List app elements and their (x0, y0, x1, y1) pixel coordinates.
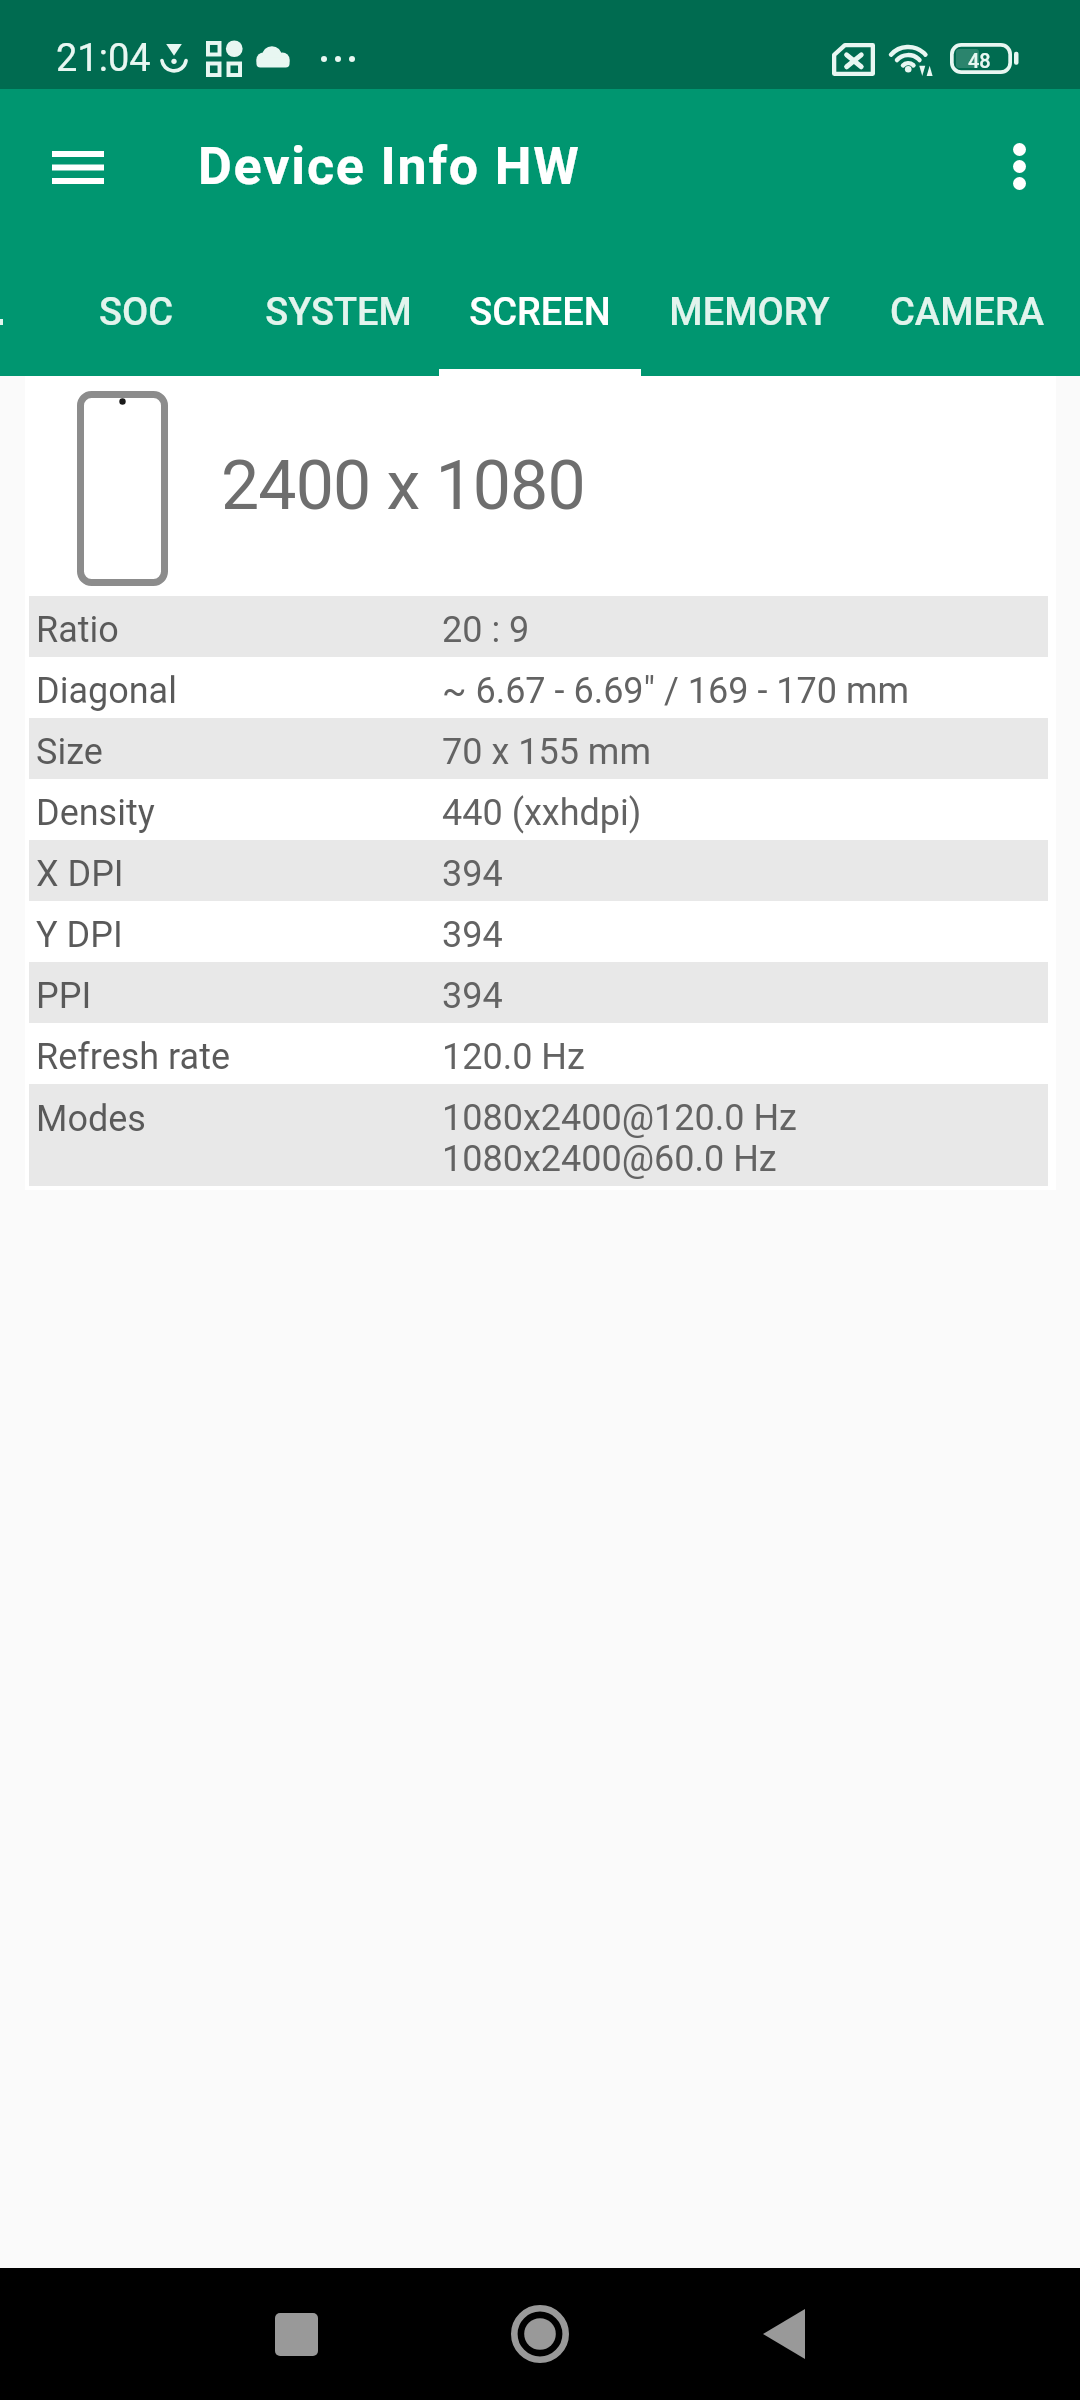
button[interactable]: Back (724, 2274, 844, 2394)
button[interactable]: CAMERA (858, 276, 1075, 376)
staticText: SOC (99, 290, 173, 335)
staticText: 70 x 155 mm (442, 731, 651, 773)
button[interactable]: PPI (29, 962, 1048, 1023)
staticText: 440 (xxhdpi) (442, 792, 642, 834)
button[interactable]: X DPI (29, 840, 1048, 901)
staticText: 1080x2400@120.0 Hz 1080x2400@60.0 Hz (442, 1097, 797, 1179)
button[interactable]: Recent apps (236, 2274, 356, 2394)
staticText: Refresh rate (36, 1036, 231, 1078)
staticText: Diagonal (36, 670, 177, 712)
staticText: Device Info HW (198, 136, 581, 197)
staticText: PPI (36, 975, 92, 1017)
button[interactable]: Ratio (29, 596, 1048, 657)
staticText: 20 : 9 (442, 609, 530, 651)
staticText: Ratio (36, 609, 119, 651)
staticText: MEMORY (669, 290, 830, 335)
button[interactable]: MEMORY (645, 276, 854, 376)
button[interactable]: SYSTEM (237, 276, 439, 376)
staticText: 120.0 Hz (442, 1036, 585, 1078)
staticText: 394 (442, 975, 503, 1017)
button[interactable]: SOC (34, 276, 237, 376)
staticText: 394 (442, 914, 503, 956)
button[interactable]: Home (480, 2274, 600, 2394)
staticText: 394 (442, 853, 503, 895)
staticText: Size (36, 731, 103, 773)
staticText: ~ 6.67 - 6.69" / 169 - 170 mm (442, 670, 910, 712)
staticText: SYSTEM (265, 290, 412, 335)
staticText: Y DPI (36, 914, 123, 956)
staticText: X DPI (36, 853, 124, 895)
staticText: 48 (968, 49, 991, 72)
button[interactable]: Size (29, 718, 1048, 779)
staticText: CAMERA (890, 290, 1044, 335)
staticText: 2400 x 1080 (221, 446, 585, 526)
staticText: Density (36, 792, 155, 834)
staticText: Modes (36, 1098, 146, 1140)
button[interactable]: Y DPI (29, 901, 1048, 962)
button[interactable]: More options (971, 118, 1067, 214)
button[interactable]: SCREEN (439, 276, 641, 376)
button[interactable]: Diagonal (29, 657, 1048, 718)
staticText: 21:04 (56, 36, 151, 81)
button[interactable]: Modes (29, 1084, 1048, 1186)
button[interactable]: Density (29, 779, 1048, 840)
button[interactable]: Refresh rate (29, 1023, 1048, 1084)
button[interactable]: Open navigation menu (26, 115, 130, 219)
staticText: SCREEN (469, 290, 611, 335)
